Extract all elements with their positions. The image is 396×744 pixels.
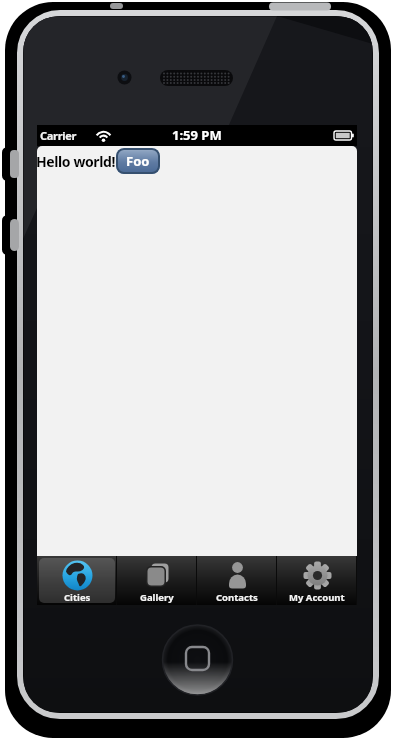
staticText: Foo — [126, 152, 150, 170]
button[interactable]: Gallery — [117, 556, 197, 605]
button[interactable]: My Account — [277, 556, 357, 605]
staticText: Hello world! — [37, 152, 115, 171]
button[interactable]: Cities — [37, 556, 117, 605]
staticText: 1:59 PM — [172, 126, 222, 144]
staticText: Carrier — [40, 128, 77, 143]
staticText: Cities — [64, 591, 91, 604]
button[interactable]: Contacts — [197, 556, 277, 605]
button[interactable]: Foo — [116, 148, 160, 174]
staticText: Contacts — [216, 591, 258, 604]
staticText: Gallery — [140, 591, 174, 604]
staticText: My Account — [289, 591, 345, 604]
